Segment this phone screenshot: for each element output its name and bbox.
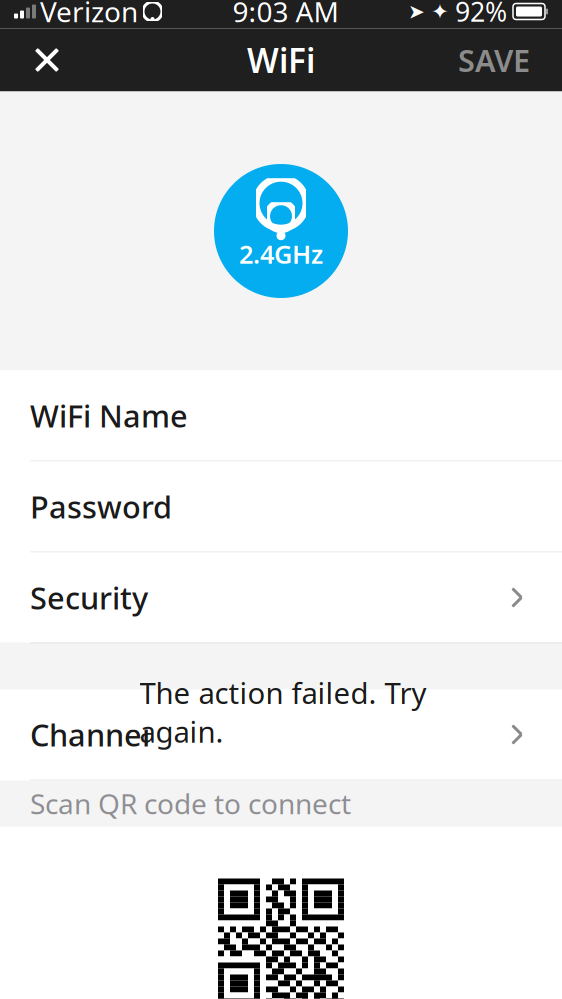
staticText: Password [30,486,172,527]
staticText: The action failed. Try again. [139,673,426,751]
staticText: SAVE [458,40,530,80]
staticText: Security [30,577,148,618]
button[interactable]: WiFi Name [0,370,562,461]
button[interactable]: Channel [0,689,562,780]
staticText: 9:03 AM [232,0,338,30]
button[interactable]: Close [16,28,78,91]
staticText: ✦ [431,0,449,24]
staticText: Scan QR code to connect [30,785,351,822]
button[interactable]: Security [0,552,562,642]
staticText: 92% [455,0,507,29]
staticText: WiFi Name [30,395,188,436]
staticText: 2.4GHz [239,237,323,271]
staticText: Channel [30,714,150,755]
staticText: WiFi [247,38,315,82]
staticText: Verizon [40,0,138,30]
staticText: ➤ [408,0,425,23]
button[interactable]: Password [0,461,562,552]
button[interactable]: SAVE [442,28,546,91]
